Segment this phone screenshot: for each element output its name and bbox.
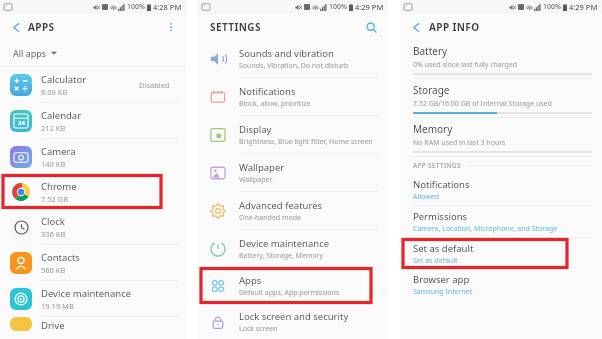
button[interactable]: Back — [406, 17, 426, 37]
staticText: 8.00 KB — [41, 87, 68, 97]
staticText: 336 KB — [41, 229, 66, 239]
button[interactable]: All apps — [0, 40, 186, 66]
staticText: 7.52 GB/16.00 GB of Internal Storage use… — [413, 99, 552, 109]
staticText: 4:29 PM — [569, 2, 598, 12]
staticText: 7.52 GB — [41, 194, 69, 204]
staticText: 4:29 PM — [355, 2, 384, 12]
staticText: Notifications — [413, 178, 470, 191]
button[interactable]: Advanced features — [198, 192, 388, 229]
staticText: Lock screen — [239, 324, 278, 334]
staticText: All apps — [13, 47, 47, 59]
staticText: Browser app — [413, 273, 470, 286]
staticText: Sounds and vibration — [239, 47, 334, 60]
staticText: Set as default — [413, 256, 458, 266]
staticText: Wallpaper — [239, 161, 285, 174]
staticText: 24 — [18, 119, 25, 127]
button[interactable]: Sounds and vibration — [198, 40, 388, 77]
staticText: Allowed — [413, 192, 439, 202]
button[interactable]: More options — [161, 17, 181, 37]
staticText: Battery — [413, 44, 448, 58]
staticText: 100% — [127, 2, 145, 12]
staticText: APP SETTINGS — [413, 161, 461, 170]
button[interactable]: Back — [6, 17, 26, 37]
staticText: 19.19 MB — [41, 301, 74, 311]
staticText: Contacts — [41, 251, 80, 264]
button[interactable]: Set as default — [400, 238, 602, 269]
staticText: Sounds, Vibration, Do not disturb — [239, 61, 349, 71]
staticText: Memory — [413, 122, 453, 136]
staticText: Lock screen and security — [239, 310, 349, 323]
staticText: Calculator — [41, 73, 87, 86]
button[interactable]: Wallpaper — [198, 154, 388, 191]
staticText: Advanced features — [239, 199, 323, 212]
button[interactable]: Permissions — [400, 206, 602, 237]
staticText: APPS — [28, 20, 55, 34]
staticText: Device maintenance — [239, 237, 330, 250]
button[interactable]: Contacts — [0, 245, 186, 280]
button[interactable]: Clock — [0, 209, 186, 244]
staticText: Apps — [239, 274, 262, 287]
button[interactable]: Calculator — [0, 67, 186, 102]
staticText: 4:28 PM — [153, 2, 182, 12]
button[interactable]: Notifications — [198, 78, 388, 115]
staticText: Display — [239, 123, 272, 136]
staticText: Clock — [41, 215, 65, 228]
staticText: 140 KB — [41, 159, 66, 169]
staticText: SETTINGS — [210, 20, 261, 34]
button[interactable]: Search — [361, 17, 381, 37]
staticText: Camera, Location, Microphone, and Storag… — [413, 224, 558, 234]
button[interactable]: 24 — [0, 103, 186, 138]
button[interactable]: Device maintenance — [0, 281, 186, 316]
staticText: One-handed mode — [239, 213, 301, 223]
staticText: 100% — [543, 2, 561, 12]
staticText: Brightness, Blue light filter, Home scre… — [239, 137, 373, 147]
staticText: Battery, Storage, Memory — [239, 251, 324, 261]
button[interactable]: Lock screen and security — [198, 304, 388, 339]
button[interactable]: Battery — [400, 40, 602, 78]
staticText: Default apps, App permissions — [239, 288, 340, 298]
staticText: Permissions — [413, 210, 468, 223]
staticText: APP INFO — [429, 20, 480, 34]
button[interactable]: Camera — [0, 139, 186, 174]
staticText: Storage — [413, 83, 450, 97]
staticText: No RAM used in last 3 hours — [413, 138, 506, 148]
staticText: Camera — [41, 145, 76, 158]
staticText: Chrome — [41, 180, 77, 193]
staticText: Calendar — [41, 109, 82, 122]
button[interactable]: Device maintenance — [198, 230, 388, 267]
staticText: 560 KB — [41, 265, 66, 275]
button[interactable]: Storage — [400, 79, 602, 117]
button[interactable]: Display — [198, 116, 388, 153]
staticText: Samsung Internet — [413, 287, 473, 297]
staticText: Drive — [41, 319, 65, 331]
staticText: 100% — [329, 2, 347, 12]
staticText: Block, allow, prioritize — [239, 99, 311, 109]
button[interactable]: Notifications — [400, 174, 602, 205]
button[interactable]: Apps — [198, 267, 388, 304]
staticText: 212 KB — [41, 123, 66, 133]
button[interactable]: Chrome — [0, 174, 186, 209]
staticText: Wallpaper — [239, 175, 273, 185]
staticText: Set as default — [413, 242, 474, 255]
staticText: Device maintenance — [41, 287, 132, 300]
button[interactable]: Memory — [400, 118, 602, 156]
staticText: Disabled — [139, 80, 170, 90]
staticText: 0% used since last fully charged — [413, 60, 518, 70]
button[interactable]: Browser app — [400, 269, 602, 300]
staticText: Notifications — [239, 85, 296, 98]
